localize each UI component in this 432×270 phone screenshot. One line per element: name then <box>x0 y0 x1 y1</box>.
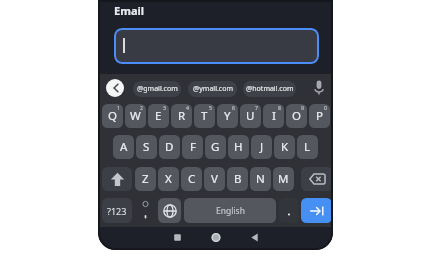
staticText: C <box>188 171 196 187</box>
staticText: 5 <box>209 104 212 111</box>
button[interactable] <box>158 198 181 223</box>
staticText: English <box>216 205 245 217</box>
staticText: O <box>292 108 301 124</box>
button[interactable] <box>312 80 326 96</box>
staticText: 6 <box>232 104 235 111</box>
staticText: @ymail.com <box>193 84 233 94</box>
button[interactable]: J <box>251 135 272 159</box>
staticText: R <box>178 108 186 124</box>
button[interactable]: O <box>286 104 307 128</box>
button[interactable]: Q <box>102 104 123 128</box>
staticText: Email <box>114 3 145 18</box>
staticText: X <box>165 171 172 187</box>
button[interactable]: F <box>182 135 203 159</box>
button[interactable]: V <box>204 167 225 191</box>
staticText: V <box>211 171 218 187</box>
staticText: Y <box>224 108 231 124</box>
button[interactable]: English <box>184 198 276 223</box>
staticText: @hotmail.com <box>246 84 294 94</box>
staticText: M <box>278 171 289 187</box>
button[interactable]: E <box>148 104 169 128</box>
staticText: L <box>304 139 311 155</box>
staticText: B <box>234 171 242 187</box>
button[interactable] <box>106 79 124 97</box>
staticText: 9 <box>301 104 304 111</box>
button[interactable]: U <box>240 104 261 128</box>
button[interactable]: S <box>136 135 157 159</box>
button[interactable] <box>279 198 299 223</box>
staticText: F <box>190 139 196 155</box>
staticText: 1 <box>117 104 120 111</box>
staticText: T <box>201 108 208 124</box>
staticText: Q <box>108 108 117 124</box>
staticText: Z <box>142 171 149 187</box>
button[interactable]: Z <box>135 167 156 191</box>
staticText: W <box>130 108 141 124</box>
button[interactable]: ?123 <box>102 198 132 223</box>
button[interactable]: P <box>309 104 330 128</box>
staticText: 4 <box>186 104 189 111</box>
staticText: 7 <box>255 104 258 111</box>
staticText: I <box>272 108 276 124</box>
button[interactable]: L <box>297 135 318 159</box>
staticText: 3 <box>163 104 166 111</box>
button[interactable]: T <box>194 104 215 128</box>
button[interactable]: @gmail.com <box>133 81 181 97</box>
button[interactable]: H <box>228 135 249 159</box>
button[interactable] <box>301 167 333 191</box>
staticText: S <box>143 139 150 155</box>
button[interactable]: D <box>159 135 180 159</box>
button[interactable]: @ymail.com <box>188 81 237 97</box>
button[interactable]: M <box>273 167 294 191</box>
staticText: E <box>155 108 162 124</box>
button[interactable] <box>135 198 156 223</box>
button[interactable]: W <box>125 104 146 128</box>
staticText: J <box>260 139 264 155</box>
button[interactable]: C <box>181 167 202 191</box>
button[interactable]: X <box>158 167 179 191</box>
button[interactable]: R <box>171 104 192 128</box>
staticText: 8 <box>278 104 281 111</box>
staticText: N <box>256 171 265 187</box>
staticText: @gmail.com <box>137 84 178 94</box>
staticText: P <box>316 108 323 124</box>
staticText: A <box>120 139 128 155</box>
staticText: K <box>281 139 289 155</box>
button[interactable]: N <box>250 167 271 191</box>
button[interactable]: B <box>227 167 248 191</box>
staticText: D <box>165 139 174 155</box>
button[interactable]: G <box>205 135 226 159</box>
button[interactable]: Y <box>217 104 238 128</box>
button[interactable] <box>102 167 132 191</box>
button[interactable]: I <box>263 104 284 128</box>
button[interactable]: K <box>274 135 295 159</box>
staticText: H <box>234 139 243 155</box>
button[interactable]: A <box>113 135 134 159</box>
button[interactable]: @hotmail.com <box>243 81 296 97</box>
button[interactable] <box>114 28 319 64</box>
staticText: U <box>246 108 255 124</box>
button[interactable] <box>301 198 332 223</box>
staticText: 2 <box>140 104 143 111</box>
staticText: 0 <box>324 104 327 111</box>
staticText: G <box>211 139 220 155</box>
staticText: ?123 <box>107 205 127 217</box>
